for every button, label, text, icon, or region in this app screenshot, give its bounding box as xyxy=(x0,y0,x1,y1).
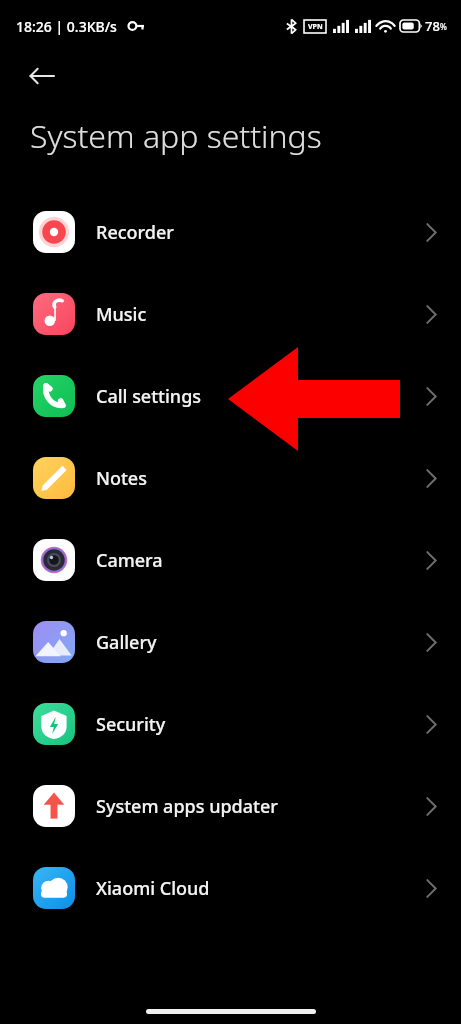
staticText: Xiaomi Cloud xyxy=(96,876,426,901)
button[interactable]: Camera xyxy=(0,519,461,601)
button[interactable]: Call settings xyxy=(0,355,461,437)
button[interactable]: Back xyxy=(18,52,66,100)
staticText: System app settings xyxy=(30,114,322,158)
button[interactable]: Xiaomi Cloud xyxy=(0,847,461,929)
button[interactable]: Notes xyxy=(0,437,461,519)
staticText: Notes xyxy=(96,466,426,491)
button[interactable]: Security xyxy=(0,683,461,765)
staticText: % xyxy=(440,21,447,32)
staticText: VPN xyxy=(308,22,323,32)
staticText: 78 xyxy=(425,17,440,35)
staticText: Call settings xyxy=(96,384,426,409)
button[interactable]: System apps updater xyxy=(0,765,461,847)
button[interactable]: Music xyxy=(0,273,461,355)
staticText: System apps updater xyxy=(96,794,426,819)
button[interactable]: Gallery xyxy=(0,601,461,683)
staticText: Gallery xyxy=(96,630,426,655)
button[interactable]: Recorder xyxy=(0,191,461,273)
staticText: Recorder xyxy=(96,220,426,245)
staticText: Camera xyxy=(96,548,426,573)
staticText: Security xyxy=(96,712,426,737)
staticText: Music xyxy=(96,302,426,327)
staticText: 18:26 | 0.3KB/s xyxy=(16,17,117,36)
